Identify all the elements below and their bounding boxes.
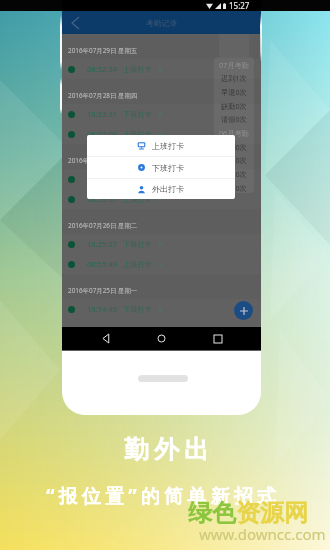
staticText: 下班打卡 <box>123 240 152 249</box>
button[interactable]: 18:25:27 <box>62 234 261 254</box>
staticText: 2016年07月27日 星期三 <box>68 156 138 165</box>
button[interactable]: 上班打卡 <box>87 135 235 156</box>
staticText: www.downcc.com <box>199 524 326 544</box>
staticText: 18:23:31 <box>87 109 118 119</box>
staticText: 缺勤0次 <box>221 169 247 179</box>
staticText: 勤外出 <box>124 434 214 465</box>
button[interactable]: 08:53:01 <box>62 189 261 209</box>
button[interactable]: 08:55:49 <box>62 254 261 274</box>
staticText: 08:55:49 <box>87 259 118 269</box>
staticText: 08:52:06 <box>87 129 118 139</box>
staticText: 2016年07月29日 星期五 <box>68 46 138 55</box>
staticText: 请假0次 <box>221 114 247 124</box>
staticText: 18:25:27 <box>87 239 118 249</box>
staticText: 18:14:45 <box>87 304 118 314</box>
staticText: 07月考勤 <box>219 60 249 70</box>
staticText: 2016年07月28日 星期四 <box>68 91 138 100</box>
staticText: 上班打卡 <box>123 260 152 269</box>
staticText: 08:53:01 <box>87 194 118 204</box>
staticText: 迟到1次 <box>221 73 247 83</box>
button[interactable]: Home <box>150 327 173 350</box>
staticText: 绿色 <box>188 498 236 528</box>
button[interactable]: Back <box>95 327 118 350</box>
staticText: 2016年07月26日 星期二 <box>68 221 138 230</box>
staticText: 早退0次 <box>221 155 247 165</box>
staticText: 下班打卡 <box>123 305 152 314</box>
button[interactable]: Back <box>65 12 86 33</box>
staticText: 上班打卡 <box>152 141 185 151</box>
staticText: 缺勤0次 <box>221 101 247 111</box>
staticText: 15:27 <box>229 0 250 11</box>
button[interactable]: 18:30:12 <box>62 169 261 189</box>
button[interactable]: 下班打卡 <box>87 157 235 178</box>
staticText: 上班打卡 <box>123 130 152 139</box>
staticText: “报位置”的简单新招式 <box>46 483 281 509</box>
button[interactable]: Recents <box>206 327 229 350</box>
staticText: 下班打卡 <box>152 163 185 173</box>
button[interactable]: Add record <box>234 301 253 320</box>
staticText: 请假0次 <box>221 183 247 193</box>
button[interactable]: 08:52:34 <box>62 59 261 79</box>
staticText: 上班打卡 <box>123 195 152 204</box>
staticText: 下班打卡 <box>123 110 152 119</box>
staticText: 08:52:34 <box>87 64 118 74</box>
button[interactable]: 18:23:31 <box>62 104 261 124</box>
staticText: 18:30:12 <box>87 174 118 184</box>
staticText: 下班打卡 <box>123 175 152 184</box>
staticText: 外出打卡 <box>152 184 185 194</box>
staticText: 资源网 <box>236 498 308 528</box>
staticText: 早退0次 <box>221 87 247 97</box>
staticText: 06月考勤 <box>219 128 249 138</box>
button[interactable]: 18:14:45 <box>62 299 261 319</box>
staticText: 考勤记录 <box>146 18 178 28</box>
staticText: 迟到0次 <box>221 142 247 152</box>
staticText: 上班打卡 <box>123 65 152 74</box>
button[interactable]: 08:52:06 <box>62 124 261 144</box>
button[interactable]: 外出打卡 <box>87 179 235 199</box>
staticText: 2016年07月25日 星期一 <box>68 286 138 295</box>
